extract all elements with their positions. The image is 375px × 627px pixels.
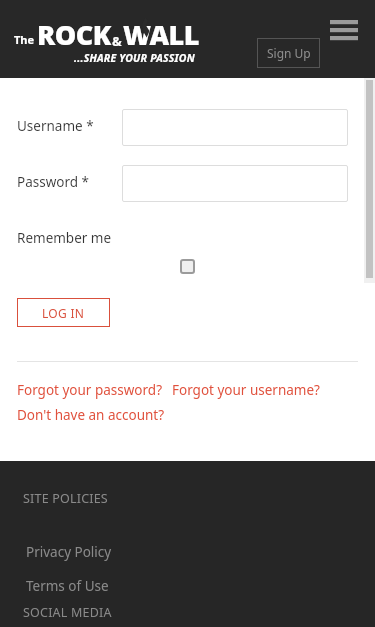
button[interactable]: Forgot your password?: [17, 381, 163, 399]
staticText: Terms of Use: [26, 577, 109, 595]
staticText: &: [112, 32, 122, 50]
staticText: LOG IN: [42, 305, 85, 321]
staticText: WALL: [123, 16, 200, 53]
staticText: SOCIAL MEDIA: [23, 604, 112, 621]
staticText: Privacy Policy: [26, 543, 112, 561]
staticText: Sign Up: [267, 45, 311, 61]
button[interactable]: Menu: [328, 15, 361, 46]
button[interactable]: LOG IN: [17, 298, 110, 327]
staticText: Forgot your username?: [172, 381, 320, 399]
staticText: ...SHARE YOUR PASSION: [74, 51, 195, 65]
staticText: ROCK: [37, 16, 111, 53]
button[interactable]: [122, 109, 348, 146]
button[interactable]: Don't have an account?: [17, 406, 165, 424]
button[interactable]: The: [14, 16, 200, 67]
staticText: Don't have an account?: [17, 406, 165, 424]
button[interactable]: [122, 165, 348, 202]
staticText: Forgot your password?: [17, 381, 163, 399]
staticText: Password *: [17, 173, 90, 191]
button[interactable]: Privacy Policy: [26, 543, 112, 561]
staticText: SITE POLICIES: [23, 490, 108, 507]
button[interactable]: Terms of Use: [26, 577, 109, 595]
staticText: The: [14, 32, 35, 47]
staticText: Username *: [17, 117, 94, 135]
button[interactable]: Remember me: [181, 260, 194, 273]
button[interactable]: Forgot your username?: [172, 381, 320, 399]
button[interactable]: Sign Up: [257, 38, 320, 68]
staticText: Remember me: [17, 229, 112, 247]
